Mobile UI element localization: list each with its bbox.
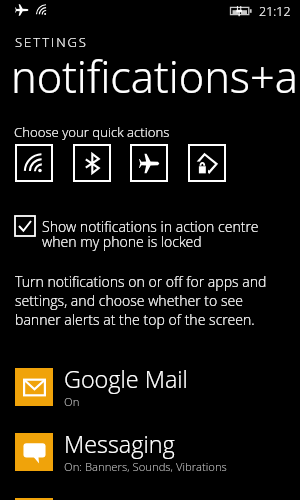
staticText: Google Mail <box>64 363 188 395</box>
button[interactable]: Messaging <box>0 433 300 480</box>
staticText: 21:12 <box>259 3 291 20</box>
button[interactable]: Google Mail <box>0 368 300 415</box>
button[interactable]: Show notifications in action centre when… <box>0 217 300 251</box>
button[interactable]: Wi-Fi <box>15 144 53 182</box>
staticText: Choose your quick actions <box>14 123 170 141</box>
button[interactable]: Aeroplane mode <box>130 144 168 182</box>
button[interactable]: Bluetooth <box>73 144 111 182</box>
staticText: On: Banners, Sounds, Vibrations <box>64 459 227 474</box>
button[interactable]: Phone <box>0 498 300 500</box>
staticText: Turn notifications on or off for apps an… <box>15 272 280 329</box>
staticText: On <box>64 394 80 409</box>
staticText: notifications+actions <box>11 47 300 106</box>
staticText: Show notifications in action centre when… <box>42 217 280 251</box>
staticText: Messaging <box>64 428 175 460</box>
staticText: SETTINGS <box>15 33 88 51</box>
button[interactable]: Rotation lock <box>188 144 226 182</box>
